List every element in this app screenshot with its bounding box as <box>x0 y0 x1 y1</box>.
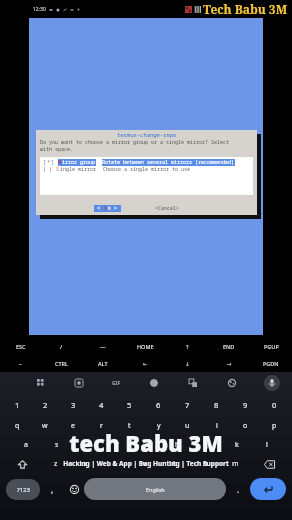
button[interactable]: PGUP <box>250 338 292 355</box>
button[interactable]: [ <box>43 159 235 166</box>
button[interactable]: 5 <box>115 394 144 416</box>
button[interactable]: ↓ <box>166 355 208 372</box>
staticText: — <box>100 343 106 350</box>
staticText: , <box>51 484 54 495</box>
button[interactable]: o <box>231 416 260 435</box>
staticText: n <box>203 459 208 469</box>
button[interactable]: Emoji <box>64 479 84 500</box>
button[interactable]: Voice input <box>264 375 280 391</box>
button[interactable]: END <box>208 338 250 355</box>
button[interactable]: e <box>59 416 87 435</box>
staticText: tech Babu 3M <box>69 428 223 458</box>
staticText: 6 <box>156 400 161 410</box>
staticText: [ <box>43 159 47 166</box>
button[interactable]: GIF <box>111 378 122 389</box>
button[interactable]: CTRL <box>41 355 82 372</box>
button[interactable]: Apps <box>34 376 48 390</box>
staticText: k <box>235 440 239 450</box>
button[interactable]: PGDN <box>250 355 292 372</box>
staticText: with space. <box>40 146 74 153</box>
button[interactable]: , <box>40 479 64 500</box>
button[interactable]: 3 <box>59 394 87 416</box>
button[interactable]: x <box>70 454 100 474</box>
button[interactable]: → <box>208 355 250 372</box>
button[interactable]: z <box>41 454 70 474</box>
button[interactable]: m <box>220 454 250 474</box>
staticText: ↓ <box>185 361 190 367</box>
button[interactable]: b <box>160 454 190 474</box>
staticText: y <box>157 421 161 431</box>
button[interactable]: — <box>82 338 124 355</box>
button[interactable]: d <box>72 435 102 454</box>
button[interactable]: c <box>100 454 130 474</box>
button[interactable]: q <box>3 416 31 435</box>
button[interactable]: r <box>87 416 115 435</box>
button[interactable]: l <box>252 435 282 454</box>
button[interactable]: p <box>260 416 289 435</box>
staticText: h <box>175 440 180 450</box>
staticText: Do you want to choose a mirror group or … <box>40 139 230 146</box>
staticText: d <box>85 440 90 450</box>
button[interactable]: 4 <box>87 394 115 416</box>
staticText: 12:30 <box>33 6 46 13</box>
button[interactable]: Enter <box>250 478 286 500</box>
staticText: 2 <box>43 400 48 410</box>
staticText: f <box>116 440 119 450</box>
button[interactable]: h <box>162 435 192 454</box>
staticText: termux-change-repo <box>117 131 177 138</box>
button[interactable]: i <box>202 416 231 435</box>
button[interactable]: a <box>10 435 41 454</box>
staticText: O <box>104 205 108 212</box>
button[interactable]: 7 <box>173 394 202 416</box>
button[interactable]: s <box>41 435 72 454</box>
button[interactable]: 2 <box>31 394 59 416</box>
staticText: < <box>97 205 104 212</box>
button[interactable]: < <box>97 205 118 212</box>
staticText: q <box>15 421 20 431</box>
staticText: ← <box>143 361 148 367</box>
button[interactable]: ↑ <box>166 338 208 355</box>
staticText: a <box>24 440 28 450</box>
staticText: M <box>58 159 62 166</box>
staticText: v <box>143 459 147 469</box>
button[interactable]: ~ <box>0 355 41 372</box>
button[interactable]: Translate <box>186 376 200 390</box>
button[interactable]: Backspace <box>250 454 289 474</box>
staticText: g <box>145 440 150 450</box>
button[interactable]: Settings <box>147 376 161 390</box>
button[interactable]: t <box>115 416 144 435</box>
button[interactable]: f <box>102 435 132 454</box>
button[interactable]: v <box>130 454 160 474</box>
button[interactable]: ← <box>124 355 166 372</box>
button[interactable]: / <box>41 338 82 355</box>
button[interactable]: Theme <box>225 376 239 390</box>
button[interactable]: 0 <box>260 394 289 416</box>
staticText: Hacking | Web & App | Bug Hunting | Tech… <box>63 459 229 468</box>
button[interactable]: 9 <box>231 394 260 416</box>
button[interactable]: ?123 <box>6 479 40 500</box>
button[interactable]: j <box>192 435 222 454</box>
button[interactable]: n <box>190 454 220 474</box>
button[interactable]: <Cancel> <box>155 205 180 212</box>
button[interactable]: Shift <box>3 454 41 474</box>
button[interactable]: ESC <box>0 338 41 355</box>
button[interactable]: w <box>31 416 59 435</box>
button[interactable]: 1 <box>3 394 31 416</box>
button[interactable]: k <box>222 435 252 454</box>
button[interactable]: 8 <box>202 394 231 416</box>
button[interactable]: 6 <box>144 394 173 416</box>
button[interactable]: g <box>132 435 162 454</box>
staticText: END <box>223 343 235 350</box>
button[interactable]: y <box>144 416 173 435</box>
staticText: ingle mirror <box>60 166 97 173</box>
staticText: . <box>237 484 240 495</box>
button[interactable]: u <box>173 416 202 435</box>
button[interactable]: HOME <box>124 338 166 355</box>
button[interactable]: ( ) <box>43 166 191 173</box>
staticText: ALT <box>98 360 108 367</box>
button[interactable]: ALT <box>82 355 124 372</box>
button[interactable]: English <box>84 478 226 500</box>
button[interactable]: . <box>226 479 250 500</box>
staticText: 1 <box>15 400 20 410</box>
button[interactable]: Clipboard <box>72 376 86 390</box>
